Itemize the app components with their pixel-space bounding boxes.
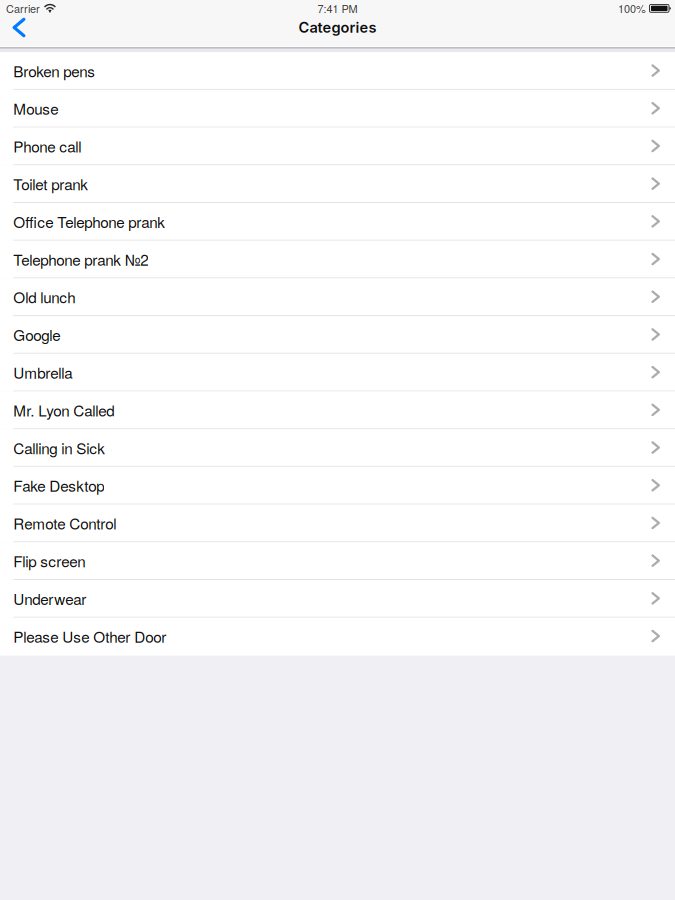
button[interactable]: Mouse [0, 90, 675, 128]
button[interactable]: Google [0, 316, 675, 354]
button[interactable]: Please Use Other Door [0, 618, 675, 655]
staticText: Mr. Lyon Called [13, 399, 114, 421]
staticText: Please Use Other Door [13, 625, 166, 647]
staticText: Broken pens [13, 60, 95, 81]
staticText: Fake Desktop [13, 474, 104, 496]
button[interactable]: Telephone prank №2 [0, 241, 675, 278]
staticText: Calling in Sick [13, 437, 105, 458]
staticText: Office Telephone prank [13, 210, 165, 232]
button[interactable]: Broken pens [0, 52, 675, 90]
staticText: Telephone prank №2 [13, 248, 148, 270]
staticText: Google [13, 323, 60, 345]
button[interactable]: Toilet prank [0, 165, 675, 203]
button[interactable]: Calling in Sick [0, 429, 675, 467]
button[interactable]: Mr. Lyon Called [0, 391, 675, 429]
button[interactable]: Office Telephone prank [0, 203, 675, 241]
button[interactable]: Fake Desktop [0, 467, 675, 505]
button[interactable]: Underwear [0, 580, 675, 618]
staticText: Remote Control [13, 512, 116, 534]
staticText: Categories [298, 19, 376, 36]
staticText: 100% [618, 1, 646, 16]
staticText: Flip screen [13, 550, 85, 572]
button[interactable]: Phone call [0, 128, 675, 165]
staticText: Mouse [13, 97, 58, 119]
button[interactable]: Remote Control [0, 505, 675, 542]
staticText: 7:41 PM [317, 1, 357, 16]
staticText: Old lunch [13, 286, 75, 308]
button[interactable]: Back [0, 17, 38, 38]
staticText: Underwear [13, 587, 86, 609]
staticText: Umbrella [13, 361, 72, 383]
button[interactable]: Umbrella [0, 354, 675, 391]
staticText: Toilet prank [13, 173, 88, 195]
button[interactable]: Flip screen [0, 542, 675, 580]
button[interactable]: Old lunch [0, 278, 675, 316]
staticText: Phone call [13, 135, 81, 157]
staticText: Carrier [6, 1, 40, 16]
